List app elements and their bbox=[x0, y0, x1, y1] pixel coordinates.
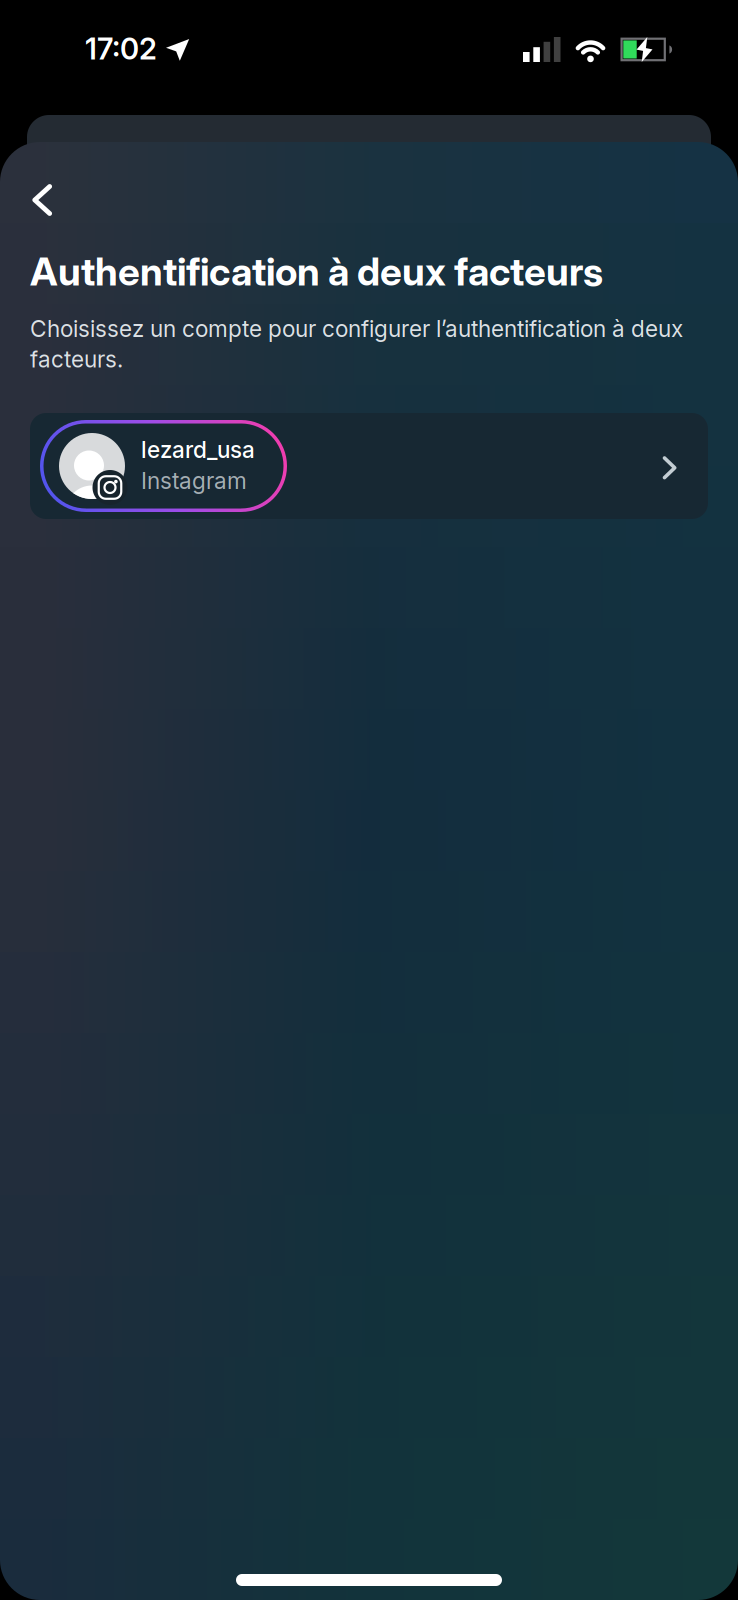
button[interactable]: lezard_usa bbox=[30, 413, 708, 519]
button[interactable]: Retour bbox=[15, 174, 71, 226]
staticText: Choisissez un compte pour configurer l’a… bbox=[30, 315, 683, 373]
staticText: Authentification à deux facteurs bbox=[30, 248, 603, 295]
staticText: lezard_usa bbox=[141, 436, 255, 463]
staticText: 17:02 bbox=[85, 31, 157, 66]
staticText: Instagram bbox=[141, 467, 247, 494]
